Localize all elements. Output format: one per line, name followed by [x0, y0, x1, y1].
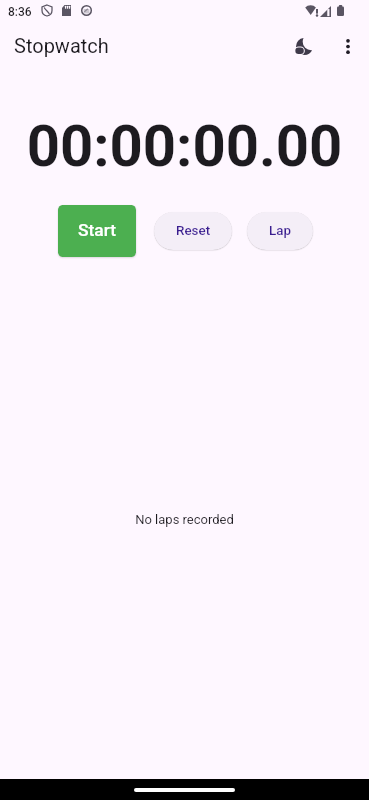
button[interactable]: Lap	[247, 212, 313, 250]
staticText: Stopwatch	[14, 34, 109, 57]
staticText: 8:36	[8, 5, 32, 19]
staticText: 00:00:00.00	[0, 112, 369, 180]
button[interactable]: Start	[58, 205, 136, 257]
staticText: Reset	[176, 223, 211, 239]
staticText: Lap	[269, 223, 291, 239]
staticText: Start	[78, 220, 117, 240]
button[interactable]: More options	[328, 26, 368, 66]
button[interactable]: Reset	[154, 212, 232, 250]
button[interactable]: Toggle dark theme	[284, 26, 324, 66]
staticText: No laps recorded	[0, 512, 369, 527]
